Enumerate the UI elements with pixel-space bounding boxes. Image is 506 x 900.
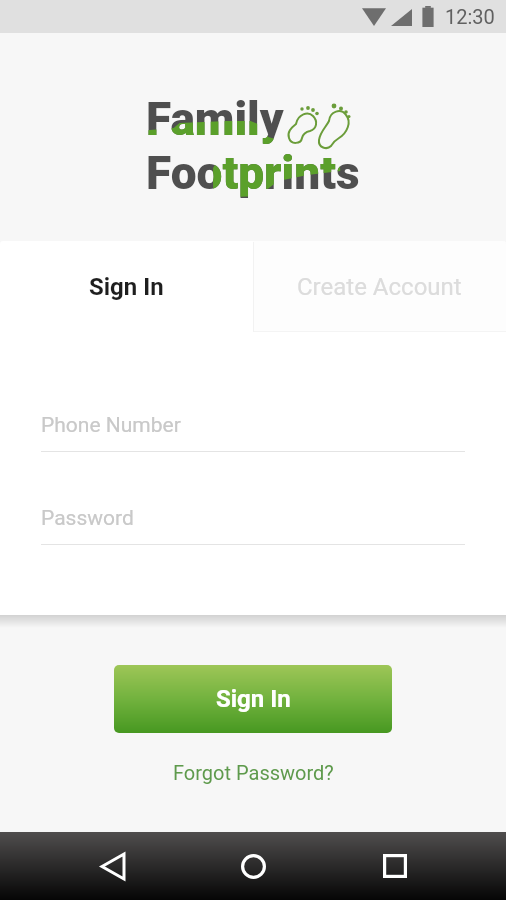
staticText: Sign In xyxy=(89,273,164,301)
staticText: Sign In xyxy=(216,685,291,713)
button[interactable]: Forgot Password? xyxy=(165,759,342,786)
staticText: Create Account xyxy=(297,273,462,301)
staticText: Forgot Password? xyxy=(173,761,334,784)
staticText: Password xyxy=(41,506,134,531)
button[interactable]: Home xyxy=(225,838,281,894)
button[interactable]: Back xyxy=(85,838,141,894)
button[interactable]: Recent apps xyxy=(367,838,423,894)
button[interactable]: Create Account xyxy=(253,241,506,332)
staticText: Family xyxy=(146,92,284,146)
staticText: Footprints xyxy=(146,146,360,200)
staticText: 12:30 xyxy=(445,5,495,28)
button[interactable]: Sign In xyxy=(114,665,392,733)
staticText: Footprints xyxy=(146,146,360,200)
button[interactable]: Phone Number xyxy=(41,413,465,452)
button[interactable]: Password xyxy=(41,506,465,545)
staticText: Phone Number xyxy=(41,413,181,438)
staticText: Family xyxy=(146,92,284,146)
button[interactable]: Sign In xyxy=(0,241,253,332)
